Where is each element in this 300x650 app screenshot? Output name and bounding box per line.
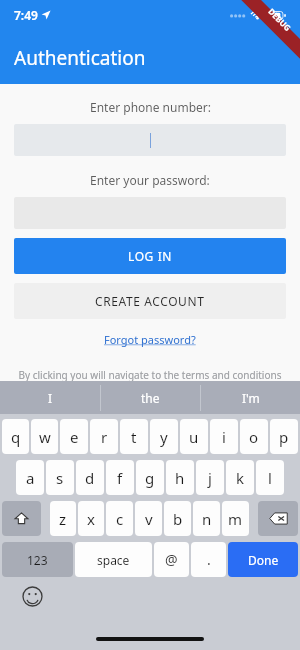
staticText: h bbox=[175, 468, 185, 488]
button[interactable]: the bbox=[101, 381, 200, 414]
staticText: the bbox=[141, 390, 160, 406]
button[interactable]: p bbox=[270, 419, 298, 454]
staticText: m bbox=[228, 509, 243, 529]
button[interactable]: a bbox=[16, 460, 44, 495]
staticText: By clicking you will navigate to the ter… bbox=[14, 368, 286, 382]
staticText: f bbox=[117, 468, 123, 488]
button[interactable]: r bbox=[90, 419, 118, 454]
button[interactable]: Emoji keyboard bbox=[22, 586, 43, 607]
button[interactable]: v bbox=[135, 501, 162, 536]
button[interactable]: Forgot password? bbox=[104, 332, 196, 347]
button[interactable]: CREATE ACCOUNT bbox=[14, 283, 286, 319]
staticText: I bbox=[48, 390, 53, 406]
staticText: Enter phone number: bbox=[90, 99, 211, 115]
button[interactable]: t bbox=[120, 419, 148, 454]
button[interactable]: h bbox=[166, 460, 194, 495]
staticText: p bbox=[279, 427, 289, 447]
button[interactable]: I'm bbox=[201, 381, 300, 414]
staticText: v bbox=[145, 509, 153, 529]
staticText: z bbox=[59, 509, 67, 529]
button[interactable]: y bbox=[150, 419, 178, 454]
button[interactable]: Backspace bbox=[258, 501, 298, 536]
button[interactable]: w bbox=[31, 419, 58, 454]
button[interactable]: Done bbox=[228, 542, 298, 577]
staticText: I'm bbox=[242, 390, 260, 406]
button[interactable]: i bbox=[210, 419, 238, 454]
button[interactable]: k bbox=[226, 460, 254, 495]
button[interactable]: z bbox=[50, 501, 76, 536]
button[interactable]: s bbox=[46, 460, 74, 495]
staticText: a bbox=[26, 468, 35, 488]
button[interactable]: u bbox=[180, 419, 208, 454]
staticText: 123 bbox=[27, 552, 48, 568]
button[interactable]: m bbox=[222, 501, 249, 536]
staticText: l bbox=[268, 468, 272, 488]
button[interactable]: Shift bbox=[2, 501, 41, 536]
button[interactable]: c bbox=[106, 501, 133, 536]
button[interactable]: g bbox=[136, 460, 164, 495]
button[interactable]: x bbox=[78, 501, 104, 536]
staticText: Done bbox=[248, 552, 279, 568]
button[interactable]: o bbox=[240, 419, 268, 454]
staticText: i bbox=[222, 427, 226, 447]
staticText: e bbox=[70, 427, 79, 447]
staticText: t bbox=[131, 427, 137, 447]
button[interactable]: . bbox=[191, 542, 226, 577]
button[interactable]: I bbox=[0, 381, 100, 414]
staticText: . bbox=[207, 550, 211, 569]
staticText: 7:49 bbox=[14, 7, 38, 23]
staticText: w bbox=[39, 427, 51, 447]
button[interactable]: n bbox=[193, 501, 220, 536]
staticText: q bbox=[11, 427, 21, 447]
staticText: y bbox=[160, 427, 168, 447]
button[interactable]: LOG IN bbox=[14, 238, 286, 274]
staticText: k bbox=[236, 468, 245, 488]
staticText: space bbox=[97, 552, 130, 568]
staticText: b bbox=[173, 509, 183, 529]
staticText: u bbox=[189, 427, 199, 447]
button[interactable]: e bbox=[60, 419, 88, 454]
button[interactable]: d bbox=[76, 460, 104, 495]
staticText: DEBUG bbox=[266, 6, 294, 33]
button[interactable]: @ bbox=[154, 542, 189, 577]
staticText: c bbox=[116, 509, 124, 529]
staticText: CREATE ACCOUNT bbox=[95, 293, 205, 309]
button[interactable] bbox=[14, 124, 286, 156]
staticText: @ bbox=[165, 550, 178, 569]
staticText: LOG IN bbox=[128, 248, 173, 264]
staticText: s bbox=[56, 468, 64, 488]
staticText: n bbox=[202, 509, 212, 529]
staticText: j bbox=[208, 468, 212, 488]
staticText: r bbox=[101, 427, 108, 447]
staticText: Authentication bbox=[14, 45, 146, 71]
staticText: Enter your password: bbox=[90, 172, 210, 188]
button[interactable]: j bbox=[196, 460, 224, 495]
button[interactable]: f bbox=[106, 460, 134, 495]
button[interactable]: b bbox=[164, 501, 191, 536]
staticText: o bbox=[249, 427, 259, 447]
button[interactable]: 123 bbox=[2, 542, 73, 577]
staticText: d bbox=[85, 468, 95, 488]
button[interactable]: q bbox=[2, 419, 29, 454]
button[interactable]: space bbox=[75, 542, 152, 577]
button[interactable]: l bbox=[256, 460, 284, 495]
staticText: g bbox=[145, 468, 155, 488]
staticText: x bbox=[87, 509, 95, 529]
